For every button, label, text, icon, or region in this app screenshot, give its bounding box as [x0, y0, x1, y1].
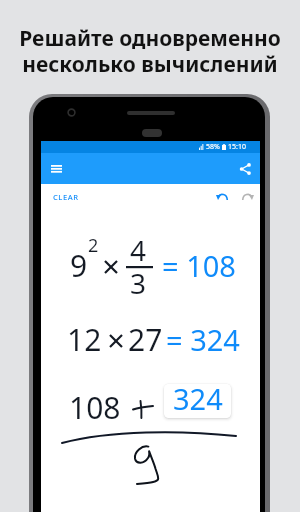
- staticText: = 324: [166, 320, 240, 359]
- button[interactable]: Undo: [212, 186, 232, 206]
- staticText: 27: [128, 319, 163, 360]
- staticText: 12: [67, 319, 102, 360]
- button[interactable]: Menu: [41, 154, 71, 184]
- button[interactable]: CLEAR: [49, 188, 83, 206]
- staticText: 3: [130, 264, 147, 302]
- staticText: = 108: [162, 246, 236, 285]
- staticText: 9: [70, 245, 88, 286]
- staticText: 15:10: [228, 142, 246, 152]
- staticText: 324: [173, 384, 223, 413]
- staticText: CLEAR: [53, 192, 79, 202]
- staticText: 108: [69, 387, 121, 428]
- staticText: 2: [88, 233, 99, 258]
- staticText: Решайте одновременно несколько вычислени…: [19, 24, 281, 78]
- staticText: 58%: [206, 142, 220, 152]
- staticText: 4: [130, 231, 147, 269]
- button[interactable]: Share: [230, 154, 260, 184]
- button[interactable]: Redo: [238, 186, 258, 206]
- button[interactable]: 324: [164, 384, 231, 418]
